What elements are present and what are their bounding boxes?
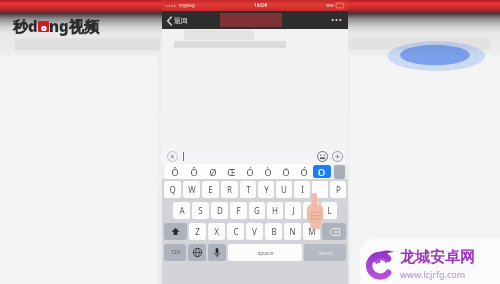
staticText: I — [301, 184, 304, 195]
button[interactable]: Ô — [165, 164, 184, 179]
button[interactable]: W — [183, 181, 200, 198]
staticText: X — [214, 226, 219, 237]
staticText: Z — [195, 226, 200, 237]
button[interactable]: I — [294, 181, 310, 198]
button[interactable]: A — [173, 202, 190, 219]
button[interactable]: Backspace — [322, 223, 346, 240]
staticText: 中国移动 — [179, 3, 195, 8]
button[interactable]: U — [276, 181, 292, 198]
staticText: 返回 — [174, 16, 188, 25]
staticText: Ø — [209, 166, 217, 178]
staticText: K — [309, 205, 314, 216]
button[interactable]: X — [208, 223, 225, 240]
staticText: 龙城安卓网 — [400, 248, 475, 267]
button[interactable]: More options — [328, 15, 345, 25]
staticText: J — [292, 205, 295, 216]
staticText: E — [208, 184, 213, 195]
button[interactable]: M — [303, 223, 320, 240]
staticText: Q — [169, 184, 176, 195]
button[interactable]: 123 — [164, 244, 186, 261]
button[interactable]: K — [303, 202, 319, 219]
button[interactable]: Q — [164, 181, 181, 198]
staticText: Œ — [227, 166, 236, 178]
button[interactable]: Ó — [295, 164, 313, 179]
staticText: S — [198, 205, 203, 216]
button[interactable]: Ø — [203, 164, 222, 179]
staticText: O — [318, 166, 326, 178]
button[interactable]: S — [192, 202, 209, 219]
button[interactable]: L — [321, 202, 337, 219]
staticText: Ô — [190, 166, 198, 178]
staticText: 16:04 — [254, 2, 267, 9]
staticText: 20% — [326, 3, 334, 8]
staticText: Ô — [171, 166, 179, 178]
button[interactable]: Mute — [167, 151, 178, 162]
staticText: B — [271, 226, 277, 237]
staticText: M — [308, 226, 316, 237]
staticText: Y — [264, 184, 269, 195]
button[interactable]: P — [330, 181, 346, 198]
staticText: www.lcjrfg.com — [400, 268, 466, 280]
staticText: W — [188, 184, 196, 195]
button[interactable]: Shift — [164, 223, 187, 240]
staticText: D — [217, 205, 223, 216]
staticText: Ó — [246, 166, 254, 178]
button[interactable]: Change keyboard — [188, 244, 206, 261]
button[interactable]: C — [227, 223, 244, 240]
button[interactable]: N — [284, 223, 301, 240]
staticText: V — [252, 226, 257, 237]
button[interactable]: D — [211, 202, 228, 219]
button[interactable]: T — [240, 181, 256, 198]
staticText: o — [41, 21, 47, 32]
staticText: T — [246, 184, 251, 195]
staticText: ng视频 — [49, 16, 99, 36]
button[interactable]: F — [230, 202, 247, 219]
button[interactable]: Emoji — [317, 151, 328, 162]
staticText: F — [236, 205, 241, 216]
staticText: C — [233, 226, 239, 237]
button[interactable]: B — [265, 223, 282, 240]
staticText: 秒d — [13, 16, 38, 36]
button[interactable]: E — [202, 181, 219, 198]
button[interactable]: G — [249, 202, 265, 219]
staticText: U — [281, 184, 287, 195]
button[interactable]: Ó — [241, 164, 259, 179]
button[interactable]: H — [267, 202, 283, 219]
staticText: N — [289, 226, 296, 237]
button[interactable]: O — [313, 165, 331, 178]
button[interactable]: Ö — [277, 164, 295, 179]
button[interactable]: V — [246, 223, 263, 240]
staticText: H — [272, 205, 278, 216]
staticText: P — [336, 184, 341, 195]
button[interactable]: J — [285, 202, 301, 219]
staticText: Send — [318, 249, 333, 257]
button[interactable]: Ò — [259, 164, 277, 179]
button[interactable]: Y — [258, 181, 274, 198]
staticText: G — [254, 205, 260, 216]
button[interactable]: R — [221, 181, 238, 198]
button[interactable]: Œ — [222, 164, 241, 179]
button[interactable]: Voice input — [208, 244, 226, 261]
button[interactable]: Send — [304, 244, 346, 261]
staticText: 123 — [171, 249, 180, 256]
staticText: A — [179, 205, 185, 216]
button[interactable]: 返回 — [165, 13, 190, 28]
button[interactable]: Z — [189, 223, 206, 240]
staticText: space — [257, 249, 274, 257]
button[interactable]: space — [228, 244, 302, 261]
button[interactable] — [312, 181, 328, 198]
button[interactable]: Ô — [184, 164, 203, 179]
staticText: L — [327, 205, 332, 216]
staticText: Ò — [264, 166, 272, 178]
button[interactable]: Add attachment — [332, 151, 343, 162]
staticText: Ó — [300, 166, 308, 178]
staticText: R — [227, 184, 232, 195]
staticText: Ö — [282, 166, 290, 178]
